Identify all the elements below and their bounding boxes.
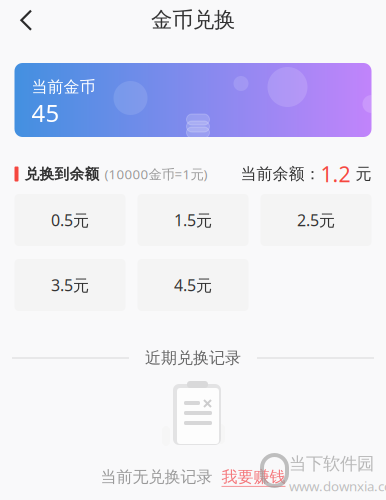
staticText: 1.2 [320,160,350,188]
staticText: 当前余额： [240,164,320,184]
staticText: 1.5元 [174,209,212,231]
staticText: 元 [350,164,371,184]
button[interactable]: 0.5元 [14,194,125,246]
button[interactable]: 我要赚钱 [221,467,285,487]
staticText: 4.5元 [174,274,212,296]
staticText: 兑换到余额 [24,165,99,183]
staticText: 45 [31,97,59,129]
staticText: 当前无兑换记录 [100,467,212,487]
staticText: www.downxia.com [289,477,386,495]
button[interactable]: 3.5元 [14,259,125,311]
staticText: (10000金币=1元) [104,165,207,183]
button[interactable]: 2.5元 [260,194,371,246]
staticText: 2.5元 [297,209,335,231]
staticText: 我要赚钱 [221,467,285,487]
staticText: 金币兑换 [151,7,235,33]
staticText: 当前金币 [31,77,95,97]
staticText: 近期兑换记录 [145,348,241,368]
staticText: 3.5元 [51,274,89,296]
button[interactable]: Back [0,0,52,40]
staticText: 当下软件园 [289,453,374,474]
staticText: 0.5元 [51,209,89,231]
button[interactable]: 1.5元 [137,194,248,246]
button[interactable]: 4.5元 [137,259,248,311]
